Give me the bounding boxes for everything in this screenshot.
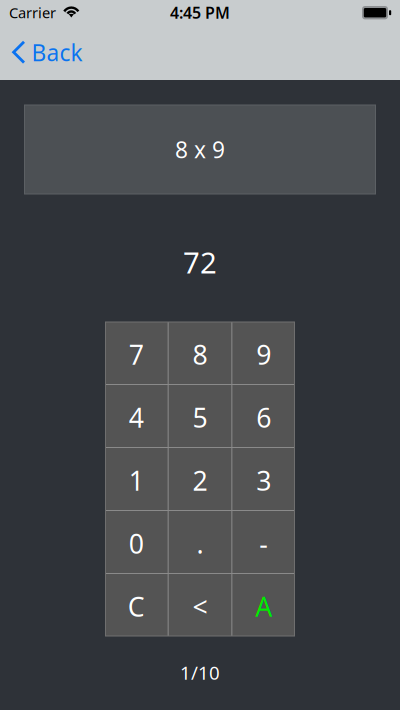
- staticText: 0: [129, 526, 144, 561]
- staticText: 1: [129, 463, 144, 498]
- button[interactable]: 2: [169, 448, 231, 510]
- button[interactable]: 1: [105, 448, 168, 510]
- staticText: 3: [256, 463, 271, 498]
- staticText: 8 x 9: [175, 134, 225, 164]
- staticText: .: [196, 526, 203, 561]
- staticText: Carrier: [9, 3, 56, 22]
- button[interactable]: 7: [105, 322, 168, 384]
- staticText: 9: [256, 337, 271, 372]
- staticText: 5: [192, 400, 207, 435]
- staticText: C: [128, 589, 145, 624]
- staticText: 4: [129, 400, 144, 435]
- staticText: 8: [192, 337, 207, 372]
- button[interactable]: 6: [232, 385, 295, 447]
- button[interactable]: 4: [105, 385, 168, 447]
- staticText: 1/10: [180, 660, 220, 685]
- button[interactable]: Minus: [232, 511, 295, 573]
- staticText: 6: [256, 400, 271, 435]
- button[interactable]: Delete: [169, 574, 231, 636]
- button[interactable]: Back: [0, 25, 94, 80]
- button[interactable]: 9: [232, 322, 295, 384]
- button[interactable]: 5: [169, 385, 231, 447]
- staticText: 2: [192, 463, 207, 498]
- staticText: 4:45 PM: [170, 2, 230, 23]
- staticText: <: [192, 589, 207, 624]
- staticText: A: [255, 589, 272, 624]
- button[interactable]: 3: [232, 448, 295, 510]
- staticText: 72: [183, 242, 217, 281]
- button[interactable]: 8: [169, 322, 231, 384]
- staticText: -: [259, 526, 268, 561]
- staticText: 7: [129, 337, 144, 372]
- button[interactable]: 0: [105, 511, 168, 573]
- button[interactable]: Decimal point: [169, 511, 231, 573]
- staticText: Back: [31, 37, 82, 67]
- button[interactable]: Answer: [232, 574, 295, 636]
- button[interactable]: Clear: [105, 574, 168, 636]
